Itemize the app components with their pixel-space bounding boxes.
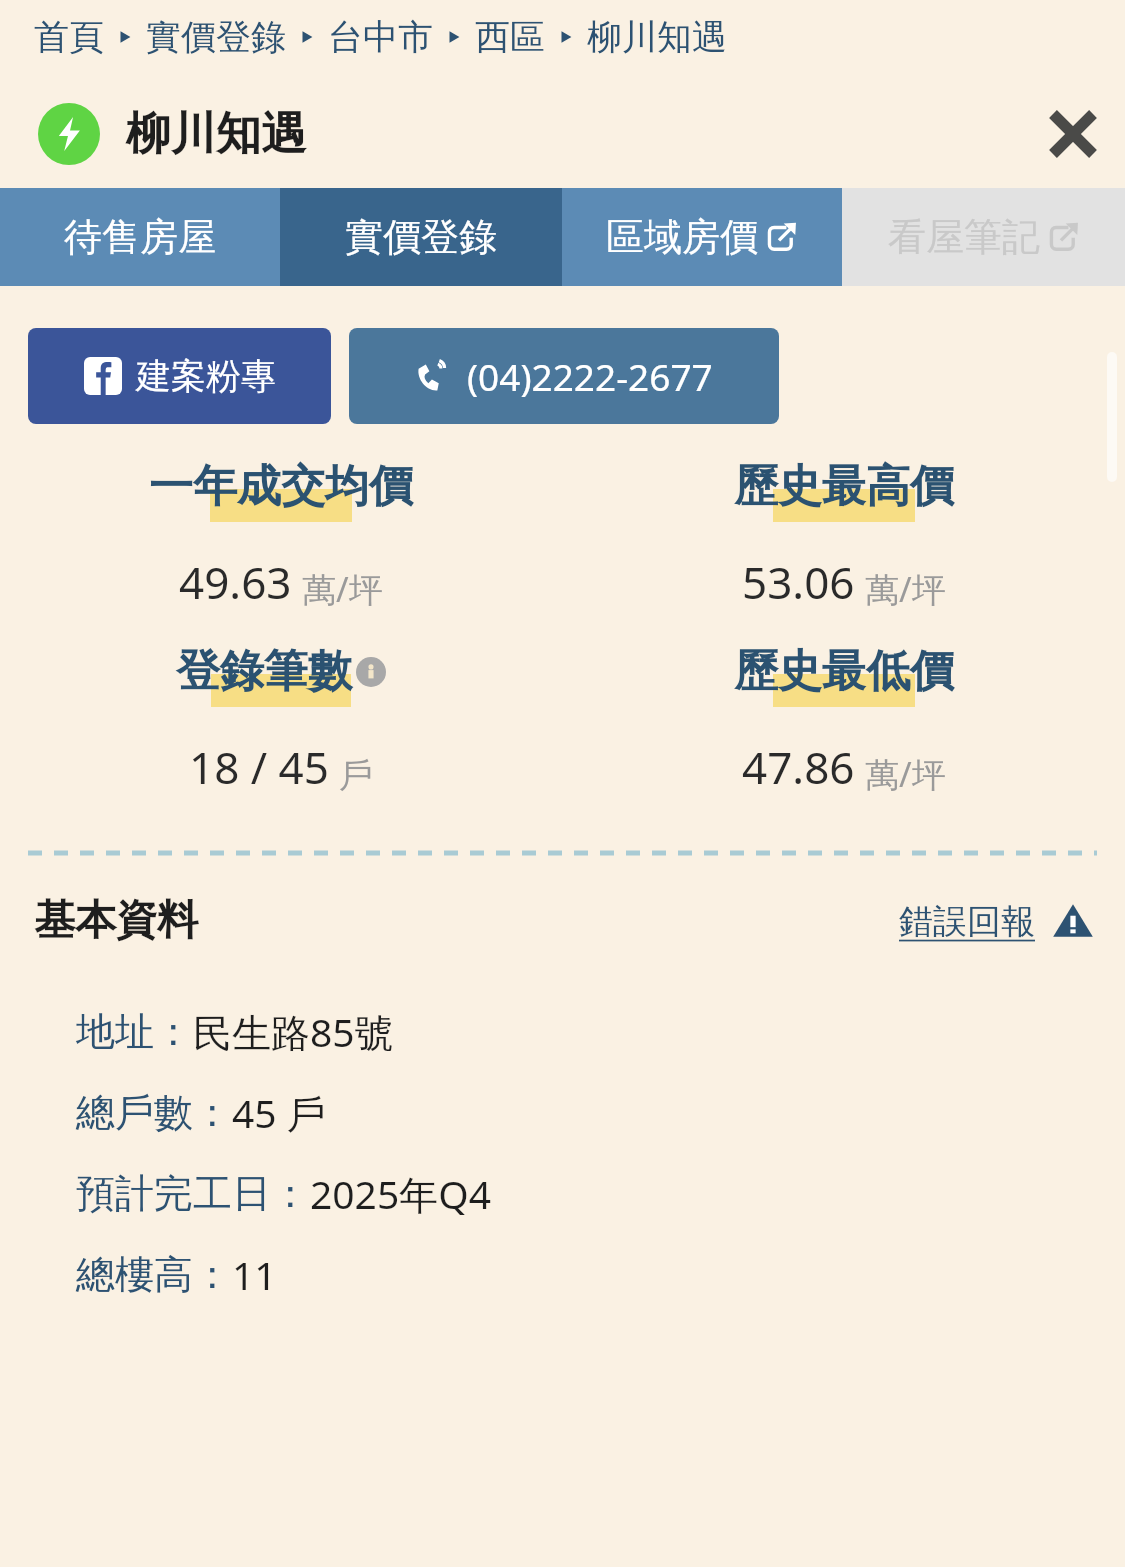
staticText: 柳川知遇 — [587, 15, 727, 59]
staticText: 民生路85號 — [193, 1005, 394, 1058]
staticText: 18 / 45 — [189, 737, 329, 797]
staticText: (04)2222-2677 — [467, 351, 713, 401]
staticText: 一年成交均價 — [149, 459, 413, 514]
staticText: 實價登錄 — [345, 213, 497, 261]
button[interactable]: 西區 — [475, 15, 545, 59]
staticText: 柳川知遇 — [126, 106, 306, 163]
staticText: 地址： — [76, 1007, 193, 1056]
button[interactable]: 首頁 — [34, 15, 104, 59]
button[interactable]: 區域房價 — [562, 188, 842, 286]
staticText: 西區 — [475, 15, 545, 59]
staticText: 歷史最低價 — [734, 644, 954, 699]
button[interactable]: 建案粉專 — [28, 328, 331, 424]
staticText: 2025年Q4 — [310, 1167, 491, 1220]
staticText: 戶 — [339, 754, 373, 797]
staticText: 建案粉專 — [136, 354, 276, 398]
button[interactable]: 待售房屋 — [0, 188, 280, 286]
staticText: 53.06 — [742, 552, 855, 612]
staticText: 萬/坪 — [302, 566, 383, 612]
staticText: 台中市 — [328, 15, 433, 59]
button[interactable]: 說明 — [356, 657, 386, 687]
staticText: 基本資料 — [34, 895, 198, 947]
staticText: 待售房屋 — [64, 213, 216, 261]
staticText: 總樓高： — [76, 1250, 232, 1299]
staticText: 45 戶 — [232, 1086, 326, 1139]
staticText: 47.86 — [742, 737, 855, 797]
button[interactable]: 看屋筆記 — [842, 188, 1125, 286]
button[interactable]: 實價登錄 — [146, 15, 286, 59]
staticText: 11 — [232, 1248, 277, 1301]
staticText: 49.63 — [179, 552, 292, 612]
button[interactable]: 關閉 — [1035, 96, 1111, 172]
staticText: 萬/坪 — [865, 751, 946, 797]
staticText: 總戶數： — [76, 1088, 232, 1137]
button[interactable]: 錯誤回報 — [899, 899, 1095, 943]
staticText: 萬/坪 — [865, 566, 946, 612]
button[interactable]: 實價登錄 — [280, 188, 562, 286]
staticText: 首頁 — [34, 15, 104, 59]
staticText: 登錄筆數 — [176, 644, 352, 699]
button[interactable]: (04)2222-2677 — [349, 328, 779, 424]
staticText: 預計完工日： — [76, 1169, 310, 1218]
button[interactable]: 台中市 — [328, 15, 433, 59]
staticText: 區域房價 — [606, 213, 758, 261]
staticText: 錯誤回報 — [899, 900, 1035, 943]
staticText: 歷史最高價 — [734, 459, 954, 514]
staticText: 看屋筆記 — [888, 213, 1040, 261]
button[interactable]: 柳川知遇 — [587, 15, 727, 59]
staticText: 實價登錄 — [146, 15, 286, 59]
